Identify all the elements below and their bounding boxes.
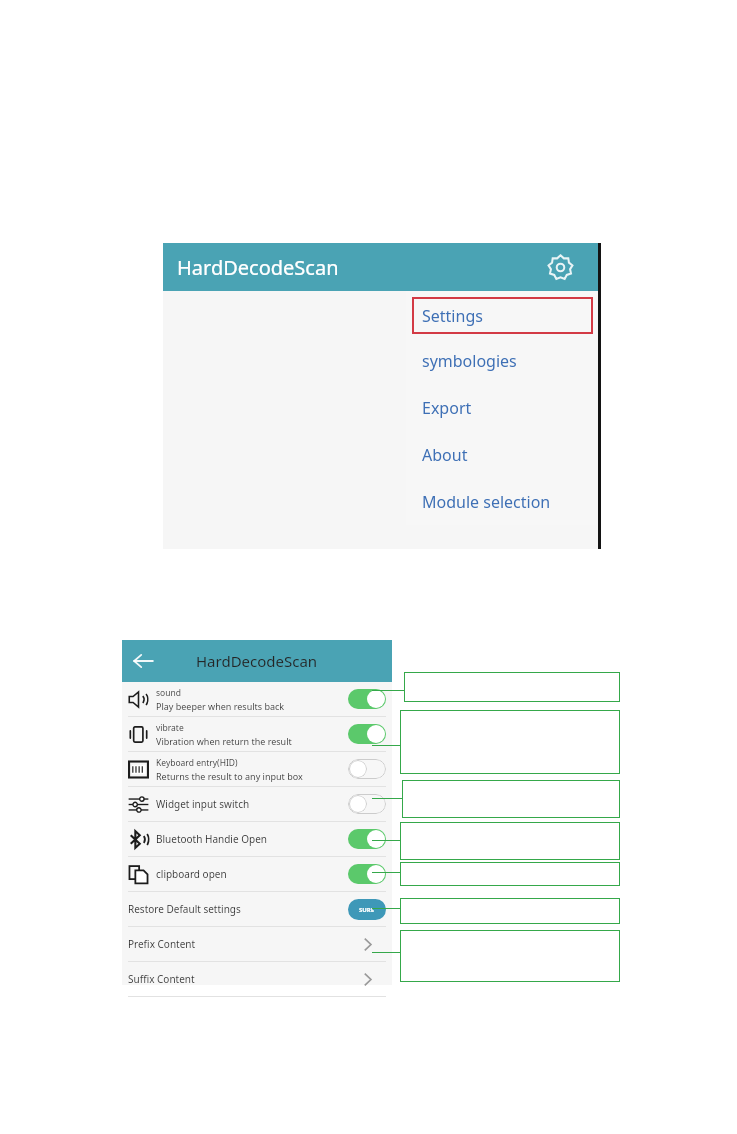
staticText: Module selection (422, 491, 551, 513)
staticText: Keyboard entry(HID) (156, 757, 238, 769)
staticText: SURE (359, 906, 375, 914)
staticText: Vibration when return the result (156, 735, 292, 747)
button[interactable]: SURE (348, 899, 386, 920)
button[interactable] (348, 724, 386, 744)
button[interactable] (348, 829, 386, 849)
button[interactable]: HardDecodeScan (163, 243, 598, 291)
staticText: sound (156, 687, 181, 699)
staticText: HardDecodeScan (177, 254, 339, 281)
staticText: HardDecodeScan (196, 651, 318, 671)
staticText: clipboard open (156, 867, 348, 881)
button[interactable] (348, 759, 386, 779)
button[interactable]: sound (122, 682, 392, 716)
button[interactable] (348, 864, 386, 884)
staticText: Returns the result to any input box (156, 770, 303, 782)
button[interactable]: Module selection (406, 485, 596, 519)
button[interactable]: Export (406, 391, 596, 425)
button[interactable]: Prefix Content (122, 927, 392, 961)
staticText: Play beeper when results back (156, 700, 285, 712)
staticText: Settings (422, 305, 483, 327)
button[interactable]: Restore Default settings (122, 892, 392, 926)
button[interactable]: Settings (412, 297, 593, 334)
staticText: Widget input switch (156, 797, 348, 811)
button[interactable]: Bluetooth Handie Open (122, 822, 392, 856)
staticText: Restore Default settings (128, 902, 348, 916)
button[interactable] (348, 794, 386, 814)
button[interactable]: Keyboard entry(HID) (122, 752, 392, 786)
button[interactable] (348, 689, 386, 709)
staticText: vibrate (156, 722, 184, 734)
button[interactable]: Back (128, 646, 158, 676)
staticText: About (422, 444, 468, 466)
staticText: Prefix Content (128, 937, 348, 951)
button[interactable]: Settings (542, 249, 578, 285)
button[interactable]: Suffix Content (122, 962, 392, 996)
button[interactable]: clipboard open (122, 857, 392, 891)
button[interactable]: vibrate (122, 717, 392, 751)
button[interactable]: About (406, 438, 596, 472)
staticText: Bluetooth Handie Open (156, 832, 348, 846)
button[interactable]: Widget input switch (122, 787, 392, 821)
staticText: symbologies (422, 350, 517, 372)
staticText: Export (422, 397, 472, 419)
staticText: Suffix Content (128, 972, 348, 986)
button[interactable]: symbologies (406, 344, 596, 378)
